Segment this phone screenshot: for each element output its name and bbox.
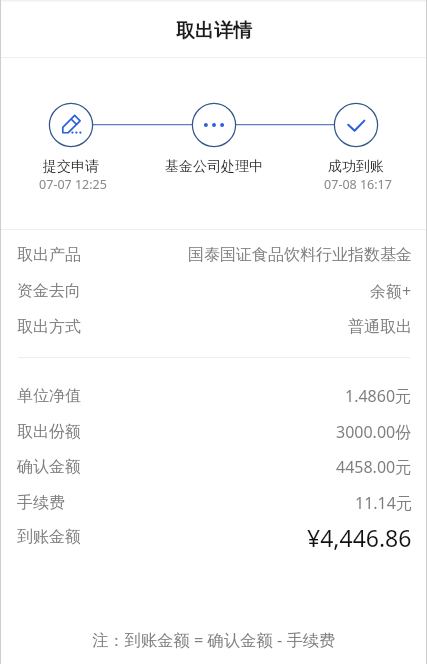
button[interactable]: 手续费: [0, 485, 427, 521]
staticText: 确认金额: [17, 457, 81, 477]
staticText: 4458.00元: [336, 456, 412, 478]
button[interactable]: 基金公司处理中: [134, 103, 294, 198]
staticText: ¥4,446.86: [307, 522, 412, 553]
button[interactable]: 到账金额: [0, 519, 427, 555]
staticText: 07-07 12:25: [0, 176, 153, 193]
staticText: 到账金额: [17, 527, 81, 547]
staticText: 成功到账: [276, 158, 427, 176]
button[interactable]: 取出方式: [0, 309, 427, 345]
button[interactable]: 单位净值: [0, 378, 427, 414]
staticText: 基金公司处理中: [134, 158, 294, 176]
button[interactable]: 资金去向: [0, 273, 427, 309]
staticText: 3000.00份: [336, 421, 412, 443]
staticText: 注：到账金额 = 确认金额 - 手续费: [92, 629, 336, 651]
button[interactable]: 成功到账，已完成: [276, 103, 427, 198]
button[interactable]: 取出份额: [0, 414, 427, 450]
staticText: 取出份额: [17, 422, 81, 442]
staticText: 1.4860元: [345, 385, 412, 407]
button[interactable]: 确认金额: [0, 449, 427, 485]
staticText: 资金去向: [17, 281, 81, 301]
staticText: 取出方式: [17, 317, 81, 337]
staticText: 提交申请: [0, 158, 151, 176]
staticText: 11.14元: [355, 492, 412, 514]
staticText: 单位净值: [17, 386, 81, 406]
staticText: 国泰国证食品饮料行业指数基金: [188, 245, 412, 265]
staticText: 余额+: [370, 280, 412, 302]
button[interactable]: 取出产品: [0, 237, 427, 273]
staticText: 07-08 16:17: [278, 176, 427, 193]
staticText: 取出产品: [17, 245, 81, 265]
button[interactable]: 提交申请，已完成: [0, 103, 151, 198]
staticText: 手续费: [17, 493, 65, 513]
staticText: 取出详情: [176, 19, 252, 43]
staticText: 普通取出: [348, 317, 412, 337]
